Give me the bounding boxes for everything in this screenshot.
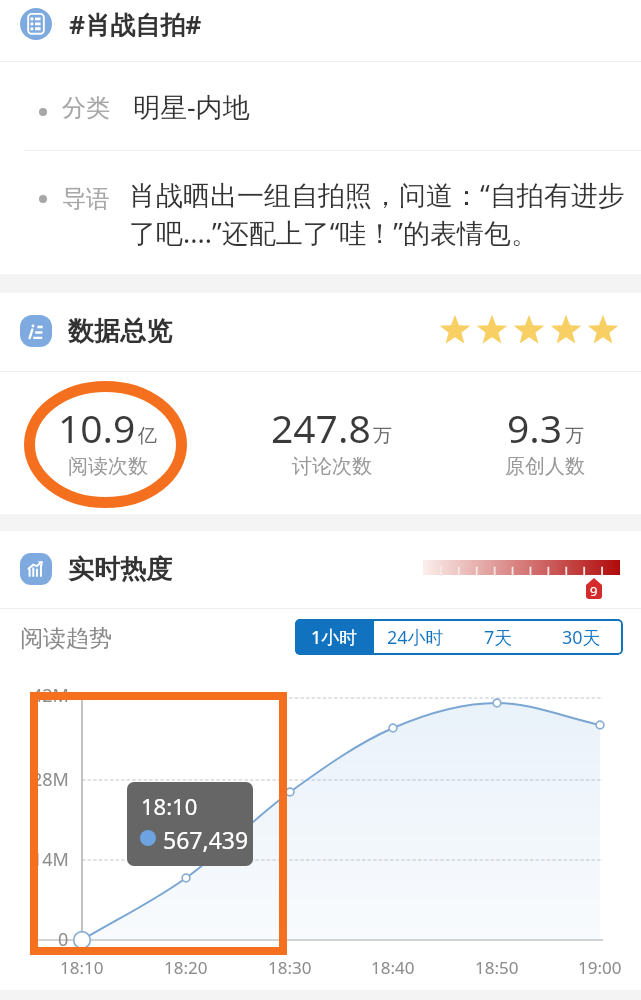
staticText: #肖战自拍#	[69, 7, 202, 41]
button[interactable]: 数据总览	[14, 310, 194, 352]
button[interactable]: 24小时	[374, 619, 457, 655]
staticText: 567,439	[163, 824, 249, 855]
staticText: 阅读次数	[68, 454, 148, 479]
staticText: 7天	[484, 625, 513, 650]
button[interactable]: 9.3	[455, 372, 635, 513]
staticText: 导语	[62, 184, 110, 214]
button[interactable]: 实时热度	[14, 548, 194, 590]
button[interactable]: 7天	[457, 619, 540, 655]
button[interactable]: #肖战自拍#	[0, 0, 641, 61]
staticText: 0	[58, 927, 69, 952]
staticText: 实时热度	[68, 553, 172, 586]
staticText: 14M	[32, 847, 69, 872]
staticText: 18:20	[164, 956, 208, 979]
button[interactable]: 分类	[0, 62, 641, 150]
staticText: 万	[565, 424, 584, 448]
staticText: 明星-内地	[133, 88, 250, 125]
staticText: 9	[590, 582, 598, 600]
staticText: 数据总览	[68, 315, 172, 348]
button[interactable]: 五星热度评级	[439, 314, 619, 346]
staticText: 18:10	[141, 791, 198, 821]
staticText: 19:00	[578, 956, 622, 979]
button[interactable]: 247.8	[241, 372, 421, 513]
staticText: 18:10	[60, 956, 104, 979]
staticText: 讨论次数	[292, 454, 372, 479]
button[interactable]: 导语	[0, 151, 641, 270]
button[interactable]: 热度指数 9	[423, 560, 620, 602]
staticText: 肖战晒出一组自拍照，问道：“自拍有进步了吧....”还配上了“哇！”的表情包。	[129, 176, 641, 251]
staticText: 亿	[138, 424, 157, 448]
staticText: 10.9	[58, 401, 136, 454]
staticText: 42M	[32, 683, 69, 708]
staticText: 阅读趋势	[20, 624, 112, 653]
staticText: 9.3	[507, 401, 563, 454]
staticText: 30天	[562, 625, 601, 650]
staticText: 18:50	[475, 956, 519, 979]
button[interactable]: 10.9	[17, 372, 197, 513]
staticText: 28M	[32, 767, 69, 792]
staticText: 18:30	[268, 956, 312, 979]
button[interactable]: 1小时	[295, 619, 374, 655]
staticText: 原创人数	[505, 454, 585, 479]
staticText: 24小时	[387, 625, 444, 650]
staticText: 分类	[62, 93, 110, 123]
staticText: 万	[373, 424, 392, 448]
staticText: 18:40	[371, 956, 415, 979]
button[interactable]: 30天	[540, 619, 623, 655]
staticText: 247.8	[271, 401, 371, 454]
staticText: 1小时	[311, 625, 358, 650]
